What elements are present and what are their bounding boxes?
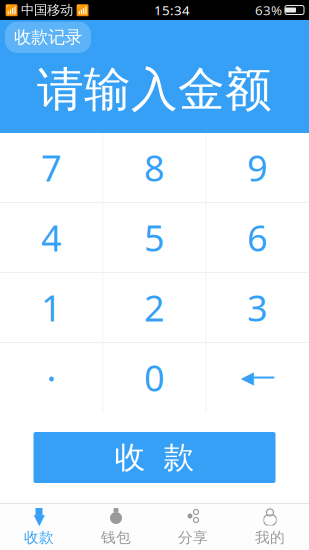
staticText: 2 xyxy=(144,284,165,331)
button[interactable]: 2 xyxy=(103,273,205,342)
staticText: 分享 xyxy=(178,528,208,546)
staticText: 4 xyxy=(41,214,62,261)
staticText: 6 xyxy=(247,214,268,261)
button[interactable]: 收 款 xyxy=(33,432,275,483)
staticText: 63% xyxy=(255,1,282,19)
staticText: 15:34 xyxy=(154,1,190,19)
staticText: 📶 xyxy=(76,4,89,16)
staticText: 7 xyxy=(41,144,62,191)
staticText: 9 xyxy=(247,144,268,191)
staticText: 5 xyxy=(144,214,165,261)
button[interactable]: · xyxy=(0,343,102,412)
staticText: 中国移动 xyxy=(21,2,73,18)
staticText: 请输入金额 xyxy=(37,61,272,118)
button[interactable]: 5 xyxy=(103,203,205,272)
staticText: 📶 xyxy=(5,4,18,16)
staticText: 1 xyxy=(41,284,62,331)
staticText: · xyxy=(46,354,56,401)
staticText: ▼ xyxy=(33,511,44,528)
staticText: ◀ xyxy=(240,368,253,387)
button[interactable]: Backspace xyxy=(206,343,308,412)
button[interactable]: 3 xyxy=(206,273,308,342)
button[interactable]: 6 xyxy=(206,203,308,272)
button[interactable]: 我的 xyxy=(231,504,308,550)
button[interactable]: 0 xyxy=(103,343,205,412)
button[interactable]: 8 xyxy=(103,133,205,202)
staticText: 3 xyxy=(247,284,268,331)
staticText: 0 xyxy=(144,354,165,401)
button[interactable]: 分享 xyxy=(154,504,231,550)
staticText: 收款 xyxy=(24,528,54,546)
button[interactable]: ▼ xyxy=(0,504,77,550)
staticText: 收 款 xyxy=(114,439,194,476)
button[interactable]: 收款记录 xyxy=(5,22,91,53)
button[interactable]: 9 xyxy=(206,133,308,202)
staticText: 收款记录 xyxy=(14,27,82,48)
button[interactable]: 4 xyxy=(0,203,102,272)
staticText: 钱包 xyxy=(101,528,131,546)
button[interactable]: 钱包 xyxy=(77,504,154,550)
staticText: 8 xyxy=(144,144,165,191)
staticText: 我的 xyxy=(255,528,285,546)
button[interactable]: 7 xyxy=(0,133,102,202)
button[interactable]: 1 xyxy=(0,273,102,342)
